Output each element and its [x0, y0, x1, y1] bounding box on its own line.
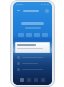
button[interactable]: [17, 56, 48, 59]
button[interactable]: Search: [27, 78, 31, 82]
button[interactable]: Back: [16, 8, 21, 13]
button[interactable]: [17, 68, 48, 71]
button[interactable]: [34, 33, 40, 37]
button[interactable]: [15, 42, 50, 53]
button[interactable]: [42, 33, 48, 37]
button[interactable]: More options: [45, 9, 49, 13]
button[interactable]: Favorites: [34, 78, 38, 82]
button[interactable]: [26, 33, 32, 37]
button[interactable]: [18, 33, 24, 37]
button[interactable]: Profile: [41, 78, 45, 82]
button[interactable]: Back: [16, 8, 49, 13]
button[interactable]: Home: [20, 78, 24, 82]
button[interactable]: [17, 62, 48, 65]
